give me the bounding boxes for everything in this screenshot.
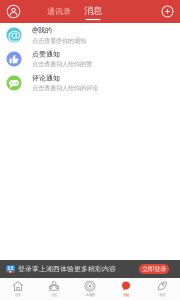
button[interactable]: 本地圈 [72,278,108,300]
button[interactable]: 社区 [36,278,72,300]
button[interactable]: 立即登录 [139,264,169,274]
staticText: @我的 [32,25,52,34]
staticText: 首页 [15,293,21,297]
button[interactable]: Profile [0,0,27,23]
button[interactable]: 消息 [84,0,102,23]
staticText: 登录掌上湘西体验更多精彩内容 [18,265,116,273]
button[interactable]: 通讯录 [47,0,71,23]
button[interactable]: 首页 [0,278,36,300]
staticText: 点击查看别人给你的评论 [32,84,98,92]
staticText: 消息 [84,5,102,16]
button[interactable]: Add [155,0,180,23]
staticText: 点击查看@你的通知 [32,36,86,45]
staticText: 通讯录 [47,7,71,16]
staticText: 本地圈 [85,293,94,297]
staticText: @ [7,25,20,45]
staticText: 评论通知 [32,74,60,82]
staticText: 点赞通知 [32,50,60,58]
staticText: 发现 [159,293,165,297]
button[interactable]: 发现 [144,278,180,300]
staticText: 社区 [51,293,57,297]
staticText: 点击查看别人给你的赞 [32,60,92,68]
staticText: 消息 [123,293,129,297]
button[interactable]: 点赞通知 [0,47,180,71]
button[interactable]: 评论通知 [0,71,180,95]
button[interactable]: @ [0,23,180,47]
staticText: 立即登录 [142,265,166,273]
button[interactable]: 消息 [108,278,144,300]
